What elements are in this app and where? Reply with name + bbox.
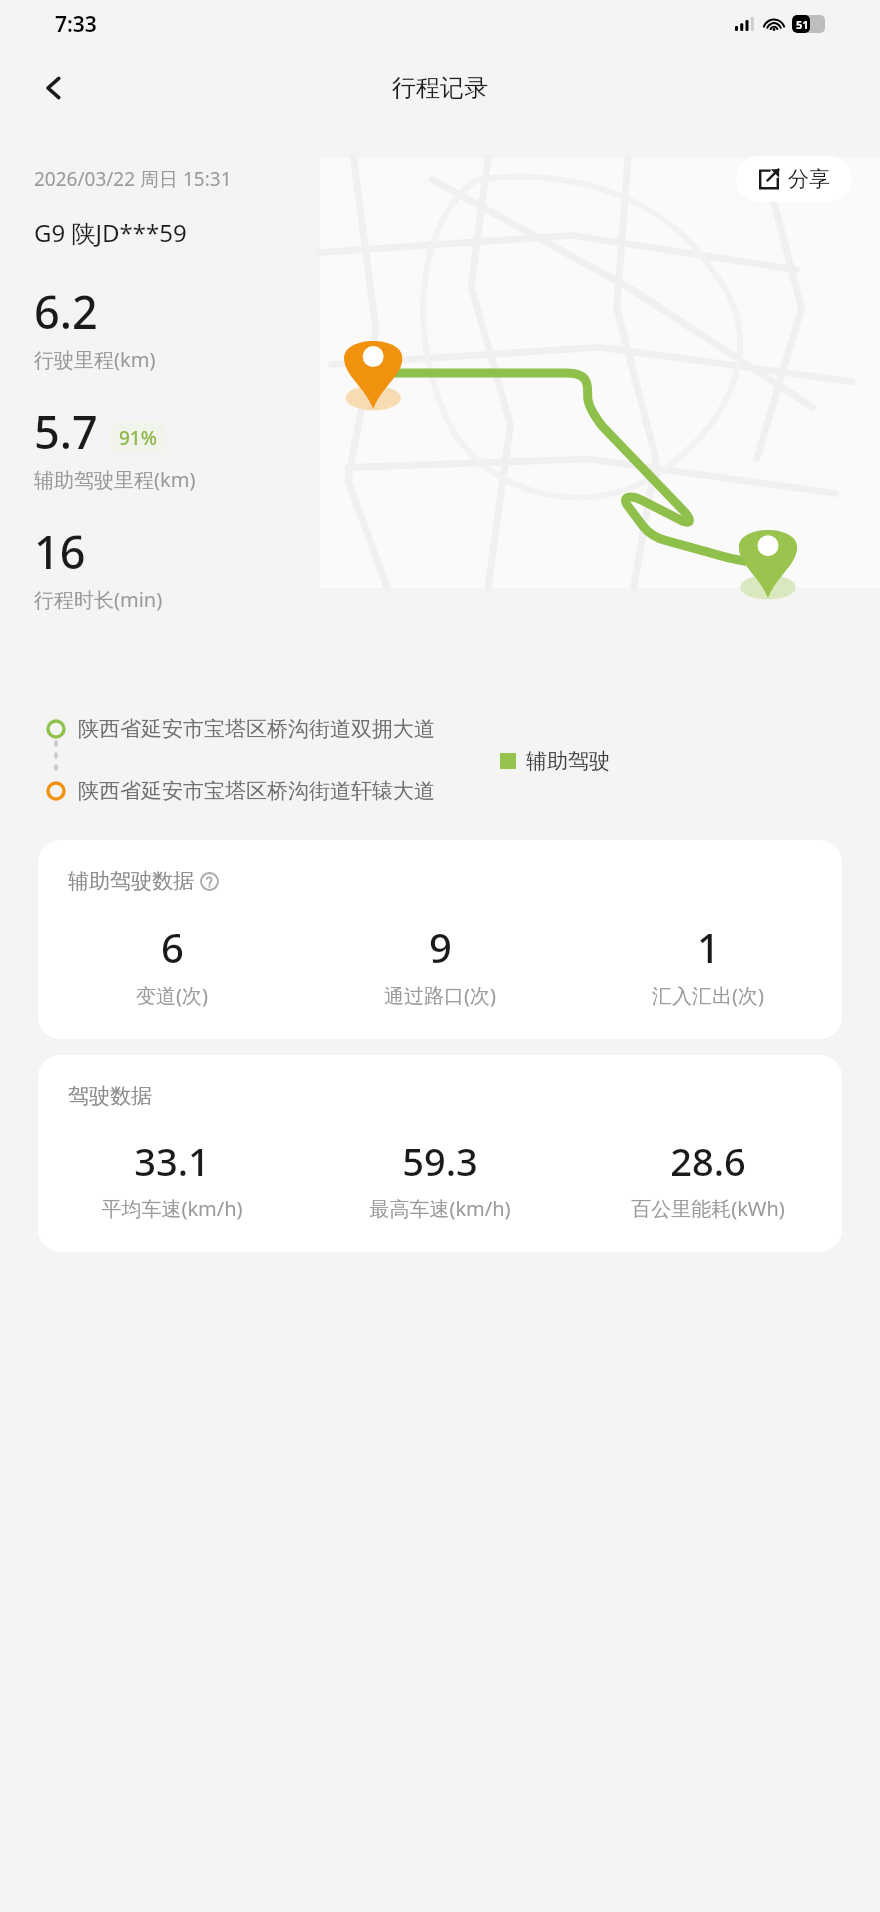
staticText: 6.2 [34,281,98,342]
staticText: 最高车速(km/h) [369,1195,511,1222]
staticText: 91% [119,425,157,451]
staticText: G9 陕JD***59 [34,216,187,249]
staticText: 6 [161,920,184,974]
staticText: 28.6 [670,1135,746,1187]
staticText: 驾驶数据 [68,1083,152,1109]
staticText: 辅助驾驶数据 [68,868,194,894]
button[interactable]: Back [28,62,80,114]
button[interactable]: 驾驶数据 [38,1055,842,1252]
staticText: 行程时长(min) [34,586,163,613]
staticText: 变道(次) [136,982,208,1009]
button[interactable]: 分享 [736,156,852,202]
staticText: 汇入汇出(次) [652,982,764,1009]
staticText: 百公里能耗(kWh) [631,1195,785,1222]
staticText: 59.3 [402,1135,478,1187]
staticText: 2026/03/22 周日 15:31 [34,166,232,192]
staticText: 33.1 [134,1135,210,1187]
staticText: 7:33 [55,10,97,39]
staticText: 行驶里程(km) [34,346,156,373]
staticText: 陕西省延安市宝塔区桥沟街道双拥大道 [78,716,435,742]
staticText: 通过路口(次) [384,982,496,1009]
staticText: 9 [429,920,452,974]
staticText: 辅助驾驶里程(km) [34,466,196,493]
staticText: 51 [796,17,809,32]
staticText: 陕西省延安市宝塔区桥沟街道轩辕大道 [78,778,435,804]
staticText: 辅助驾驶 [526,748,610,774]
button[interactable]: 辅助驾驶数据 [38,840,842,1039]
staticText: 1 [697,920,720,974]
staticText: 5.7 [34,401,98,462]
staticText: 平均车速(km/h) [101,1195,243,1222]
staticText: 16 [34,521,86,582]
staticText: 分享 [788,166,830,192]
staticText: 行程记录 [392,73,488,103]
